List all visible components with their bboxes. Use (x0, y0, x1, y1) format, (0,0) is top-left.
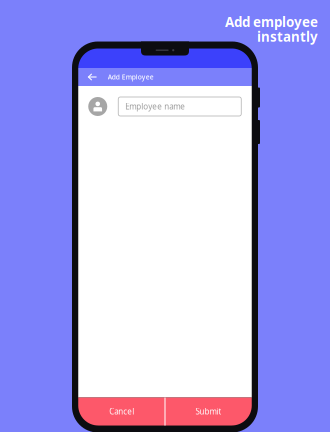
button[interactable]: Cancel (78, 397, 165, 425)
staticText: Add employee (225, 13, 318, 31)
staticText: Submit (195, 406, 221, 417)
staticText: Cancel (109, 406, 134, 417)
staticText: Add Employee (108, 73, 154, 81)
button[interactable]: Employee name (118, 97, 241, 116)
staticText: Employee name (125, 101, 185, 112)
staticText: instantly (257, 28, 318, 45)
button[interactable]: Back (78, 68, 101, 86)
button[interactable]: Submit (165, 397, 252, 425)
